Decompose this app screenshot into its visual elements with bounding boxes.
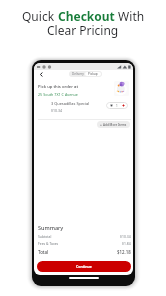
staticText: $12.18 xyxy=(117,249,131,255)
staticText: Total xyxy=(38,249,49,255)
staticText: 25 South 7X1 C Avenue xyxy=(38,92,78,97)
staticText: Delivery xyxy=(72,72,84,76)
staticText: Pickup xyxy=(88,72,98,76)
staticText: Subtotal xyxy=(38,234,52,239)
button[interactable]: Continue xyxy=(37,261,131,272)
staticText: Quick xyxy=(22,8,58,24)
button[interactable]: Back xyxy=(37,70,45,78)
staticText: 3 Quesadillas Special xyxy=(51,101,90,106)
staticText: Clear Pricing xyxy=(47,22,119,38)
button[interactable]: Delivery xyxy=(70,72,85,76)
staticText: $10.34 xyxy=(51,108,62,113)
staticText: With xyxy=(115,8,145,24)
staticText: Continue xyxy=(76,264,92,269)
staticText: Fees & Taxes xyxy=(38,241,59,246)
button[interactable]: Quantity xyxy=(106,102,128,109)
staticText: Pick up this order at xyxy=(38,84,79,90)
button[interactable]: Pickup xyxy=(85,72,101,76)
staticText: $1.84 xyxy=(122,241,131,246)
staticText: + xyxy=(100,122,102,127)
staticText: 1 xyxy=(116,104,118,108)
staticText: Checkout xyxy=(58,8,115,24)
staticText: Add More Items xyxy=(103,123,127,127)
button[interactable]: + xyxy=(97,121,130,128)
staticText: Summary xyxy=(38,224,64,231)
staticText: $10.34 xyxy=(120,234,131,239)
